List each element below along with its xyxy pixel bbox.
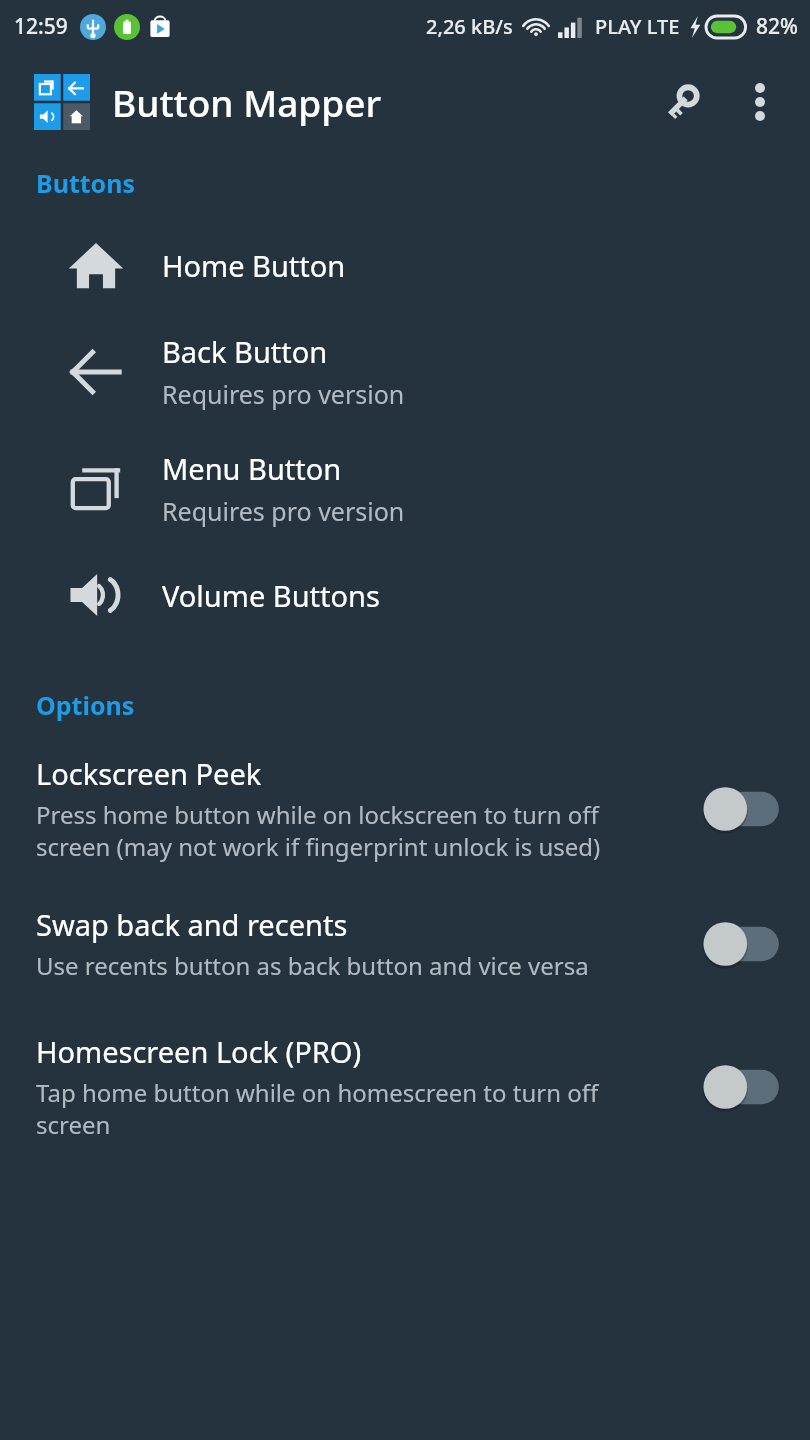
button[interactable]: Homescreen Lock (PRO) — [0, 1028, 810, 1145]
staticText: Requires pro version — [162, 377, 405, 411]
button[interactable]: Toggle — [698, 783, 784, 835]
staticText: Menu Button — [162, 449, 342, 488]
staticText: 12:59 — [14, 12, 68, 41]
staticText: Tap home button while on homescreen to t… — [36, 1076, 676, 1141]
staticText: Swap back and recents — [36, 905, 348, 944]
staticText: Options — [36, 688, 135, 722]
button[interactable]: Volume Buttons — [0, 560, 810, 630]
staticText: Home Button — [162, 246, 346, 285]
staticText: 2,26 kB/s — [426, 13, 513, 40]
button[interactable]: Toggle — [698, 918, 784, 970]
button[interactable]: Lockscreen Peek — [0, 750, 810, 867]
staticText: Buttons — [36, 166, 136, 200]
staticText: PLAY LTE — [595, 13, 680, 40]
staticText: 82% — [756, 12, 798, 41]
staticText: Use recents button as back button and vi… — [36, 949, 589, 982]
button[interactable]: Home Button — [0, 230, 810, 300]
staticText: Requires pro version — [162, 494, 405, 528]
button[interactable]: Toggle — [698, 1061, 784, 1113]
staticText: Volume Buttons — [162, 576, 380, 615]
staticText: Homescreen Lock (PRO) — [36, 1032, 362, 1071]
button[interactable]: Back Button — [0, 326, 810, 417]
button[interactable]: More options — [728, 70, 792, 134]
button[interactable]: Menu Button — [0, 443, 810, 534]
staticText: Back Button — [162, 332, 328, 371]
button[interactable]: Unlock pro version — [650, 70, 714, 134]
staticText: Press home button while on lockscreen to… — [36, 798, 676, 863]
staticText: Lockscreen Peek — [36, 754, 262, 793]
button[interactable]: Swap back and recents — [0, 901, 810, 986]
staticText: Button Mapper — [112, 77, 382, 127]
